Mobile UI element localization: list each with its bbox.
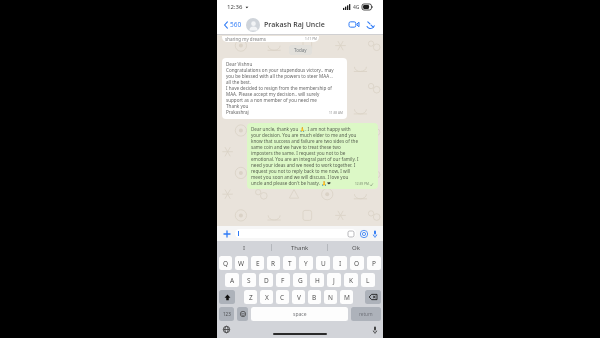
other: Stickers <box>348 231 354 237</box>
staticText: emotional. You are an integral part of o… <box>251 156 359 162</box>
button[interactable]: V <box>292 290 305 304</box>
button[interactable]: B <box>308 290 321 304</box>
button[interactable]: I <box>217 241 271 254</box>
button[interactable]: 123 <box>219 307 234 321</box>
staticText: Congratulations on your stupendous victo… <box>226 67 334 73</box>
staticText: E <box>256 259 260 268</box>
button[interactable]: X <box>260 290 273 304</box>
staticText: Dear Vishnu <box>226 61 253 67</box>
button[interactable]: Change keyboard <box>223 326 230 333</box>
staticText: 11:38 AM <box>329 111 343 115</box>
button[interactable]: J <box>327 273 341 287</box>
staticText: Thank you <box>226 103 249 109</box>
button[interactable]: T <box>283 256 296 270</box>
staticText: V <box>297 293 301 302</box>
button[interactable]: N <box>324 290 337 304</box>
staticText: Prakash Raj Uncle <box>264 20 325 30</box>
staticText: same coin and we have to treat these two <box>251 144 341 150</box>
staticText: X <box>265 293 269 302</box>
staticText: Y <box>304 259 308 268</box>
button[interactable]: K <box>344 273 358 287</box>
button[interactable]: F <box>276 273 290 287</box>
staticText: B <box>312 293 317 302</box>
staticText: MAA. Please accept my decision.. will su… <box>226 91 320 97</box>
button[interactable]: W <box>235 256 248 270</box>
staticText: S <box>247 276 251 285</box>
staticText: R <box>271 259 276 268</box>
button[interactable]: M <box>340 290 353 304</box>
button[interactable]: L <box>361 273 375 287</box>
staticText: T <box>288 259 292 268</box>
button[interactable]: Contact photo <box>246 18 260 32</box>
staticText: uncle and please don't be hasty. 🙏❤ <box>251 180 331 186</box>
staticText: J <box>333 276 335 285</box>
button[interactable]: 560 <box>223 18 243 31</box>
button[interactable]: P <box>367 256 381 270</box>
staticText: F <box>281 276 285 285</box>
button[interactable]: Emoji <box>237 307 248 321</box>
staticText: Dear uncle, thank you 🙏. I am not happy … <box>251 126 351 132</box>
button[interactable]: U <box>316 256 330 270</box>
button[interactable]: R <box>267 256 280 270</box>
button[interactable]: sharing my dreams <box>222 36 319 42</box>
staticText: I <box>339 259 342 268</box>
button[interactable]: I <box>333 256 347 270</box>
button[interactable]: Attach <box>222 229 232 239</box>
button[interactable]: D <box>259 273 273 287</box>
staticText: support as a non member of you need me <box>226 97 317 103</box>
button[interactable]: G <box>293 273 307 287</box>
button[interactable]: Video call <box>347 19 361 30</box>
button[interactable]: Backspace <box>365 290 381 304</box>
button[interactable]: Z <box>244 290 257 304</box>
staticText: Today <box>294 47 307 53</box>
button[interactable]: E <box>251 256 264 270</box>
button[interactable]: Y <box>299 256 313 270</box>
staticText: G <box>298 276 303 285</box>
button[interactable]: O <box>350 256 364 270</box>
staticText: U <box>321 259 326 268</box>
staticText: C <box>280 293 285 302</box>
staticText: W <box>238 259 245 268</box>
staticText: O <box>354 259 360 268</box>
staticText: 1:11 PM <box>305 37 317 41</box>
staticText: 12:36 <box>227 3 243 11</box>
button[interactable]: Shift <box>219 290 235 304</box>
button[interactable]: Dear uncle, thank you 🙏. I am not happy … <box>247 123 378 189</box>
button[interactable]: A <box>225 273 239 287</box>
staticText: M <box>344 293 350 302</box>
staticText: N <box>328 293 333 302</box>
staticText: need your ideas and we need to work toge… <box>251 162 356 168</box>
button[interactable]: H <box>310 273 324 287</box>
staticText: Thank <box>291 244 309 252</box>
staticText: A <box>230 276 235 285</box>
staticText: space <box>293 311 307 318</box>
button[interactable]: return <box>351 307 381 321</box>
staticText: Q <box>223 259 229 268</box>
button[interactable]: Q <box>219 256 232 270</box>
staticText: L <box>366 276 370 285</box>
staticText: K <box>349 276 354 285</box>
button[interactable]: S <box>242 273 256 287</box>
staticText: request you not to reply back to me now,… <box>251 168 351 174</box>
button[interactable]: Voice call <box>364 18 377 31</box>
button[interactable]: Dictate <box>373 326 377 334</box>
staticText: imposters the same. I request you not to… <box>251 150 346 156</box>
staticText: you be blessed with all the powers to st… <box>226 73 333 79</box>
staticText: all the best. <box>226 79 251 85</box>
button[interactable]: Stickers <box>235 229 356 238</box>
staticText: Z <box>249 293 253 302</box>
staticText: P <box>372 259 376 268</box>
staticText: sharing my dreams <box>225 36 266 42</box>
button[interactable]: Camera <box>359 229 369 239</box>
button[interactable]: Voice message <box>372 229 378 239</box>
button[interactable]: C <box>276 290 289 304</box>
staticText: I <box>243 244 246 252</box>
staticText: D <box>264 276 269 285</box>
staticText: know that success and failure are two si… <box>251 138 358 144</box>
button[interactable]: space <box>251 307 348 321</box>
button[interactable]: Dear Vishnu <box>222 58 347 119</box>
button[interactable]: Ok <box>328 241 383 254</box>
staticText: return <box>359 311 373 317</box>
staticText: 12:39 PM <box>355 182 369 186</box>
button[interactable]: Thank <box>272 241 327 254</box>
